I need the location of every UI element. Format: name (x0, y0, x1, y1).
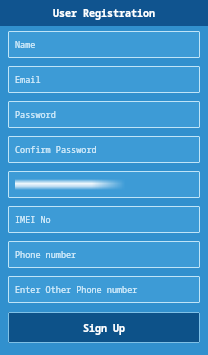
button[interactable]: Email (8, 66, 200, 93)
staticText: Enter Other Phone number (15, 284, 138, 296)
staticText: Confirm Password (15, 144, 97, 156)
staticText: Sign Up (83, 321, 125, 335)
staticText: Email (15, 74, 41, 86)
button[interactable]: Sign Up (8, 312, 200, 343)
button[interactable]: Confirm Password (8, 136, 200, 163)
button[interactable]: Name (8, 31, 200, 58)
button[interactable] (8, 171, 200, 198)
button[interactable]: Password (8, 101, 200, 128)
staticText: User Registration (53, 6, 155, 20)
button[interactable]: Enter Other Phone number (8, 276, 200, 303)
button[interactable]: Phone number (8, 241, 200, 268)
staticText: Name (15, 39, 36, 51)
button[interactable]: IMEI No (8, 206, 200, 233)
staticText: Password (15, 109, 56, 121)
staticText: IMEI No (15, 214, 51, 226)
staticText: Phone number (15, 249, 77, 261)
